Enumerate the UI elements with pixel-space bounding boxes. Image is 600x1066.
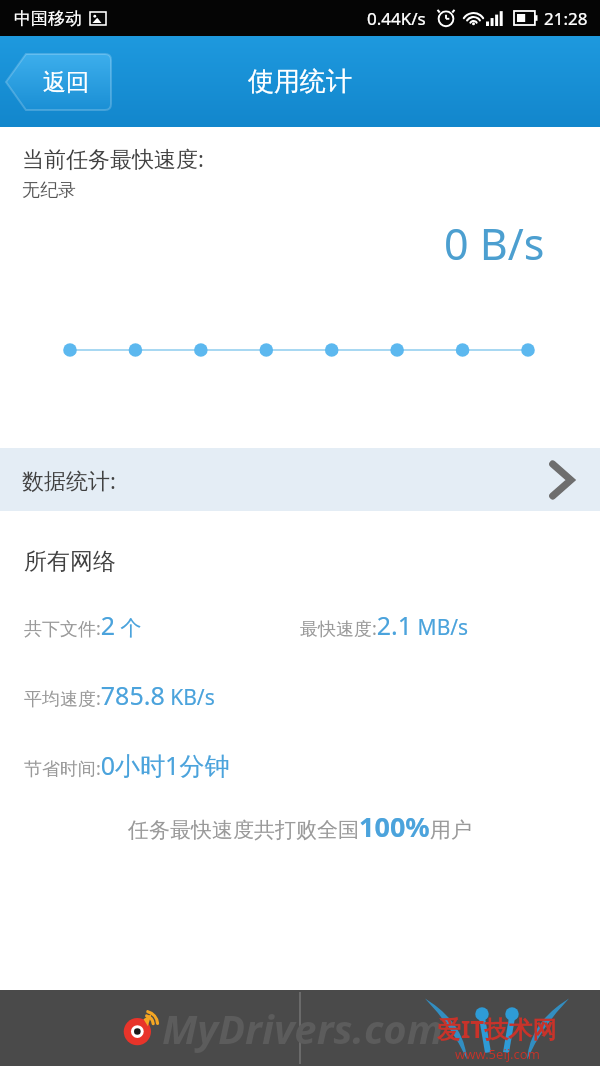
staticText: 0 B/s [444, 214, 545, 273]
button[interactable]: 返回 [6, 54, 111, 110]
staticText: 返回 [43, 68, 89, 97]
staticText: 0.44K/s [367, 7, 426, 30]
staticText: 共下文件:2 个 [24, 608, 142, 642]
staticText: 当前任务最快速度: [22, 143, 204, 173]
staticText: 21:28 [544, 7, 588, 30]
staticText: www.5eij.com [455, 1045, 540, 1063]
staticText: 无纪录 [22, 179, 76, 202]
staticText: 平均速度:785.8 KB/s [24, 678, 215, 712]
staticText: 所有网络 [24, 547, 116, 576]
staticText: 爱IT技术网 [437, 1012, 557, 1045]
staticText: 使用统计 [248, 65, 352, 98]
button[interactable]: 数据统计: [0, 448, 600, 511]
staticText: 节省时间:0小时1分钟 [24, 748, 230, 782]
staticText: MyDrivers.com [162, 1001, 443, 1055]
staticText: 数据统计: [22, 465, 116, 495]
staticText: 任务最快速度共打败全国100%用户 [128, 808, 472, 845]
staticText: 中国移动 [14, 8, 82, 29]
staticText: 最快速度:2.1 MB/s [300, 608, 469, 642]
